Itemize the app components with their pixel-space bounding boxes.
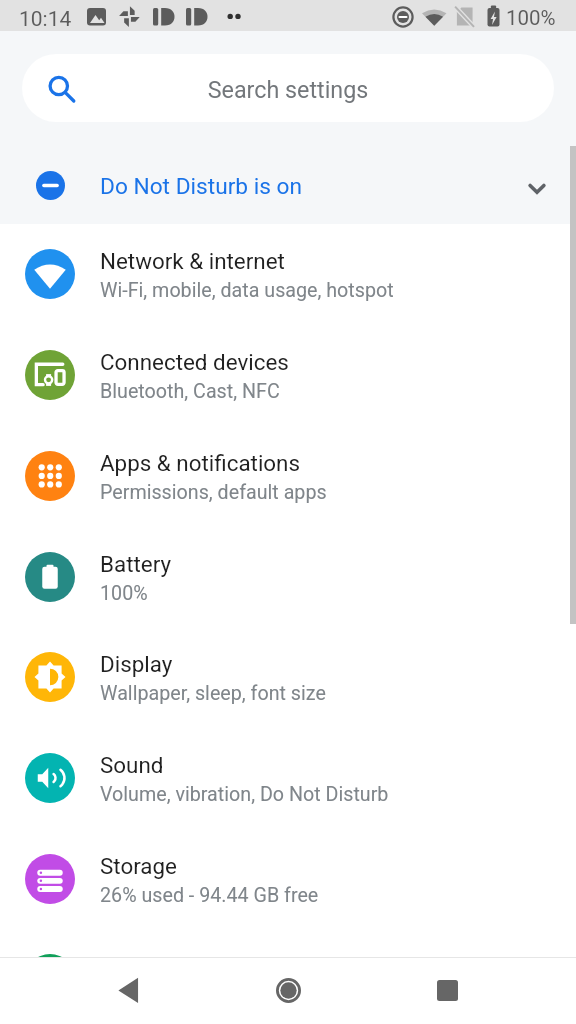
button[interactable]: Display — [0, 626, 576, 727]
staticText: Network & internet — [100, 248, 285, 274]
staticText: 100% — [100, 582, 148, 605]
button[interactable]: Home — [248, 957, 328, 1024]
staticText: Bluetooth, Cast, NFC — [100, 380, 280, 403]
staticText: Display — [100, 651, 173, 677]
button[interactable]: Back — [88, 957, 168, 1024]
staticText: Volume, vibration, Do Not Disturb — [100, 783, 389, 806]
staticText: Search settings — [22, 76, 554, 103]
staticText: Wi-Fi, mobile, data usage, hotspot — [100, 279, 394, 302]
staticText: 10:14 — [19, 7, 72, 32]
staticText: 26% used - 94.44 GB free — [100, 884, 319, 907]
staticText: Battery — [100, 551, 172, 577]
staticText: Wallpaper, sleep, font size — [100, 682, 326, 705]
button[interactable]: Sound — [0, 727, 576, 828]
staticText: 100% — [506, 6, 556, 30]
button[interactable]: Apps & notifications — [0, 425, 576, 526]
staticText: Sound — [100, 752, 164, 778]
staticText: Storage — [100, 853, 177, 879]
staticText: Permissions, default apps — [100, 481, 327, 504]
button[interactable]: Recent apps — [407, 957, 487, 1024]
button[interactable]: Connected devices — [0, 324, 576, 425]
button[interactable]: Search settings — [22, 54, 554, 122]
button[interactable] — [0, 928, 576, 957]
button[interactable]: Storage — [0, 828, 576, 929]
staticText: Do Not Disturb is on — [100, 173, 303, 200]
button[interactable]: Do Not Disturb is on — [0, 143, 576, 227]
staticText: Apps & notifications — [100, 450, 301, 476]
button[interactable]: Battery — [0, 526, 576, 627]
button[interactable]: Network & internet — [0, 223, 576, 324]
staticText: Connected devices — [100, 349, 289, 375]
